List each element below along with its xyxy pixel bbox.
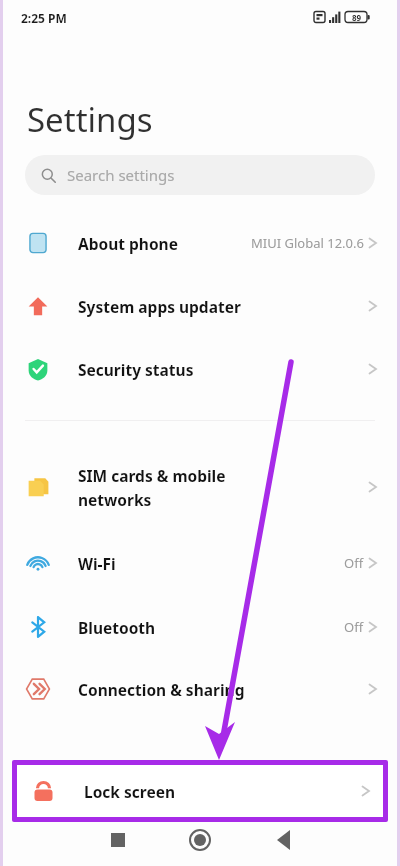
staticText: System apps updater [78,296,241,317]
staticText: Security status [78,359,194,380]
button[interactable]: Lock screen [17,765,383,817]
button[interactable]: Bluetooth [0,605,400,649]
button[interactable]: Security status [0,347,400,391]
staticText: Bluetooth [78,617,156,638]
staticText: Search settings [67,165,175,185]
staticText: Settings [27,97,153,142]
button[interactable]: About phone [0,221,400,265]
button[interactable]: Home [175,822,225,866]
button[interactable]: Connection & sharing [0,667,400,711]
staticText: Wi-Fi [78,553,116,574]
button[interactable]: Search settings [25,155,375,195]
staticText: Off [344,618,364,636]
button[interactable]: Back [258,822,308,866]
staticText: About phone [78,233,178,254]
staticText: 2:25 PM [21,10,67,26]
button[interactable]: Wi-Fi [0,541,400,585]
staticText: SIM cards & mobile networks [78,465,226,510]
staticText: Lock screen [84,781,175,802]
staticText: Off [344,554,364,572]
button[interactable]: Recents [92,822,142,866]
button[interactable]: System apps updater [0,284,400,328]
staticText: 89 [352,12,362,23]
staticText: MIUI Global 12.0.6 [251,234,364,252]
button[interactable]: SIM cards & mobile networks [0,455,400,519]
staticText: Connection & sharing [78,679,245,700]
